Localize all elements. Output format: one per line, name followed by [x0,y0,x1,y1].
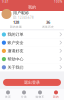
button[interactable]: 分类 [16,89,32,100]
button[interactable]: 我的 [48,89,64,100]
staticText: 浏览历史 [42,25,54,28]
button[interactable]: 帮助中心 [0,55,64,63]
staticText: 36 [46,19,50,25]
staticText: 购物车 [35,95,44,98]
staticText: 我的 [28,5,36,10]
staticText: 帮助中心 [8,57,24,61]
staticText: 我的 [53,95,59,98]
staticText: 我的收藏 [10,25,22,28]
staticText: 邀请好友 [8,48,24,53]
staticText: 100% [54,0,62,3]
button[interactable]: 首页 [0,89,16,100]
button[interactable]: 关于我们 [0,63,64,71]
button[interactable]: 我的订单 [0,30,64,39]
button[interactable]: 退出登录 [3,79,61,86]
button[interactable]: 购物车 [32,89,48,100]
staticText: ID: 12345678 [13,16,34,19]
staticText: 分类 [21,95,27,98]
staticText: 首页 [5,95,11,98]
button[interactable]: 128 [0,19,32,28]
staticText: 账户安全 [8,40,24,45]
staticText: 128 [13,19,19,25]
staticText: 关于我们 [8,65,24,70]
staticText: 用户昵称 [13,10,29,15]
button[interactable]: 账户安全 [0,39,64,47]
button[interactable]: 36 [32,19,64,28]
button[interactable]: 邀请好友 [0,47,64,55]
staticText: 退出登录 [24,80,40,85]
staticText: 我的订单 [8,32,24,37]
staticText: 9:41 [2,0,9,3]
